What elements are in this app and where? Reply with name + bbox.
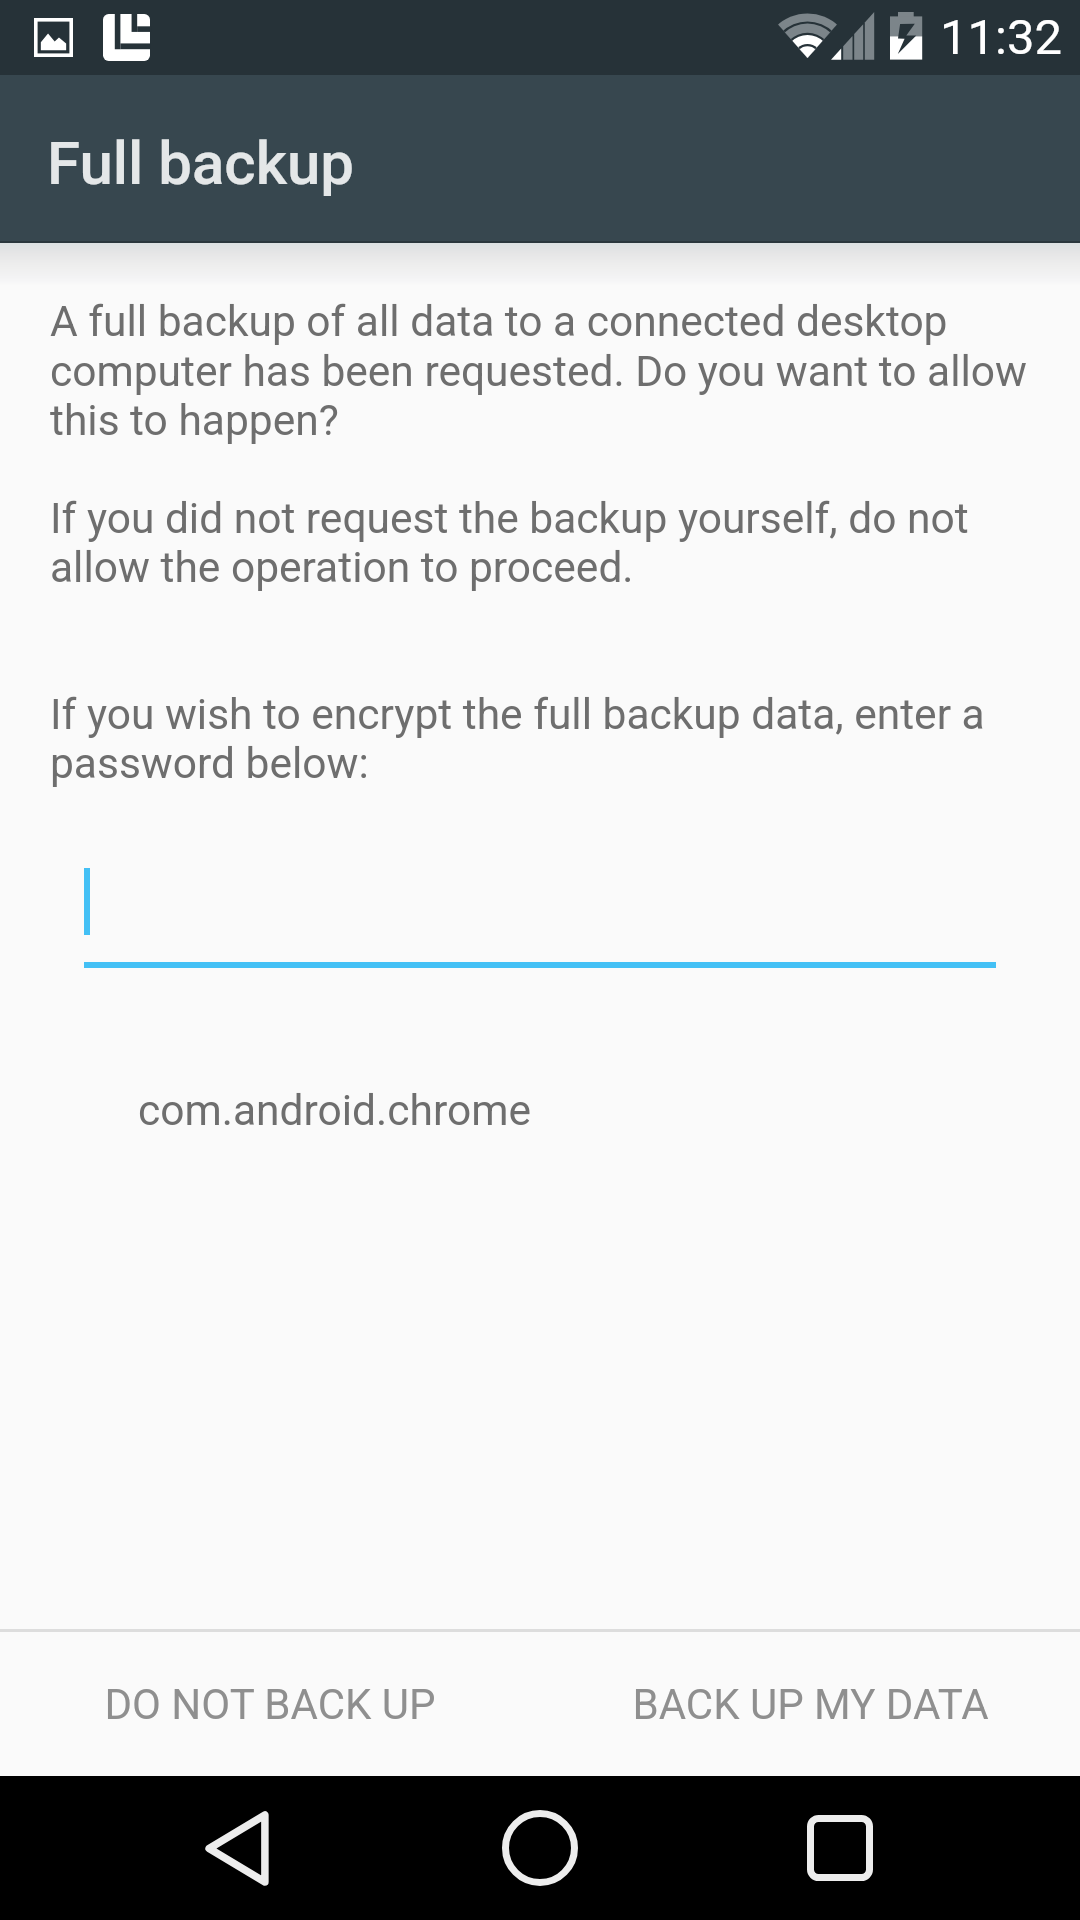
button[interactable]: BACK UP MY DATA	[540, 1632, 1080, 1776]
staticText: BACK UP MY DATA	[632, 1680, 989, 1729]
staticText: A full backup of all data to a connected…	[50, 297, 1030, 788]
button[interactable]	[84, 847, 996, 968]
staticText: com.android.chrome	[138, 1086, 531, 1136]
staticText: 11:32	[940, 9, 1063, 66]
button[interactable]: DO NOT BACK UP	[0, 1632, 540, 1776]
button[interactable]: Recent apps	[750, 1776, 930, 1920]
staticText: DO NOT BACK UP	[104, 1680, 436, 1729]
staticText: Full backup	[47, 128, 355, 198]
button[interactable]: Back	[147, 1776, 327, 1920]
button[interactable]: Home	[450, 1776, 630, 1920]
